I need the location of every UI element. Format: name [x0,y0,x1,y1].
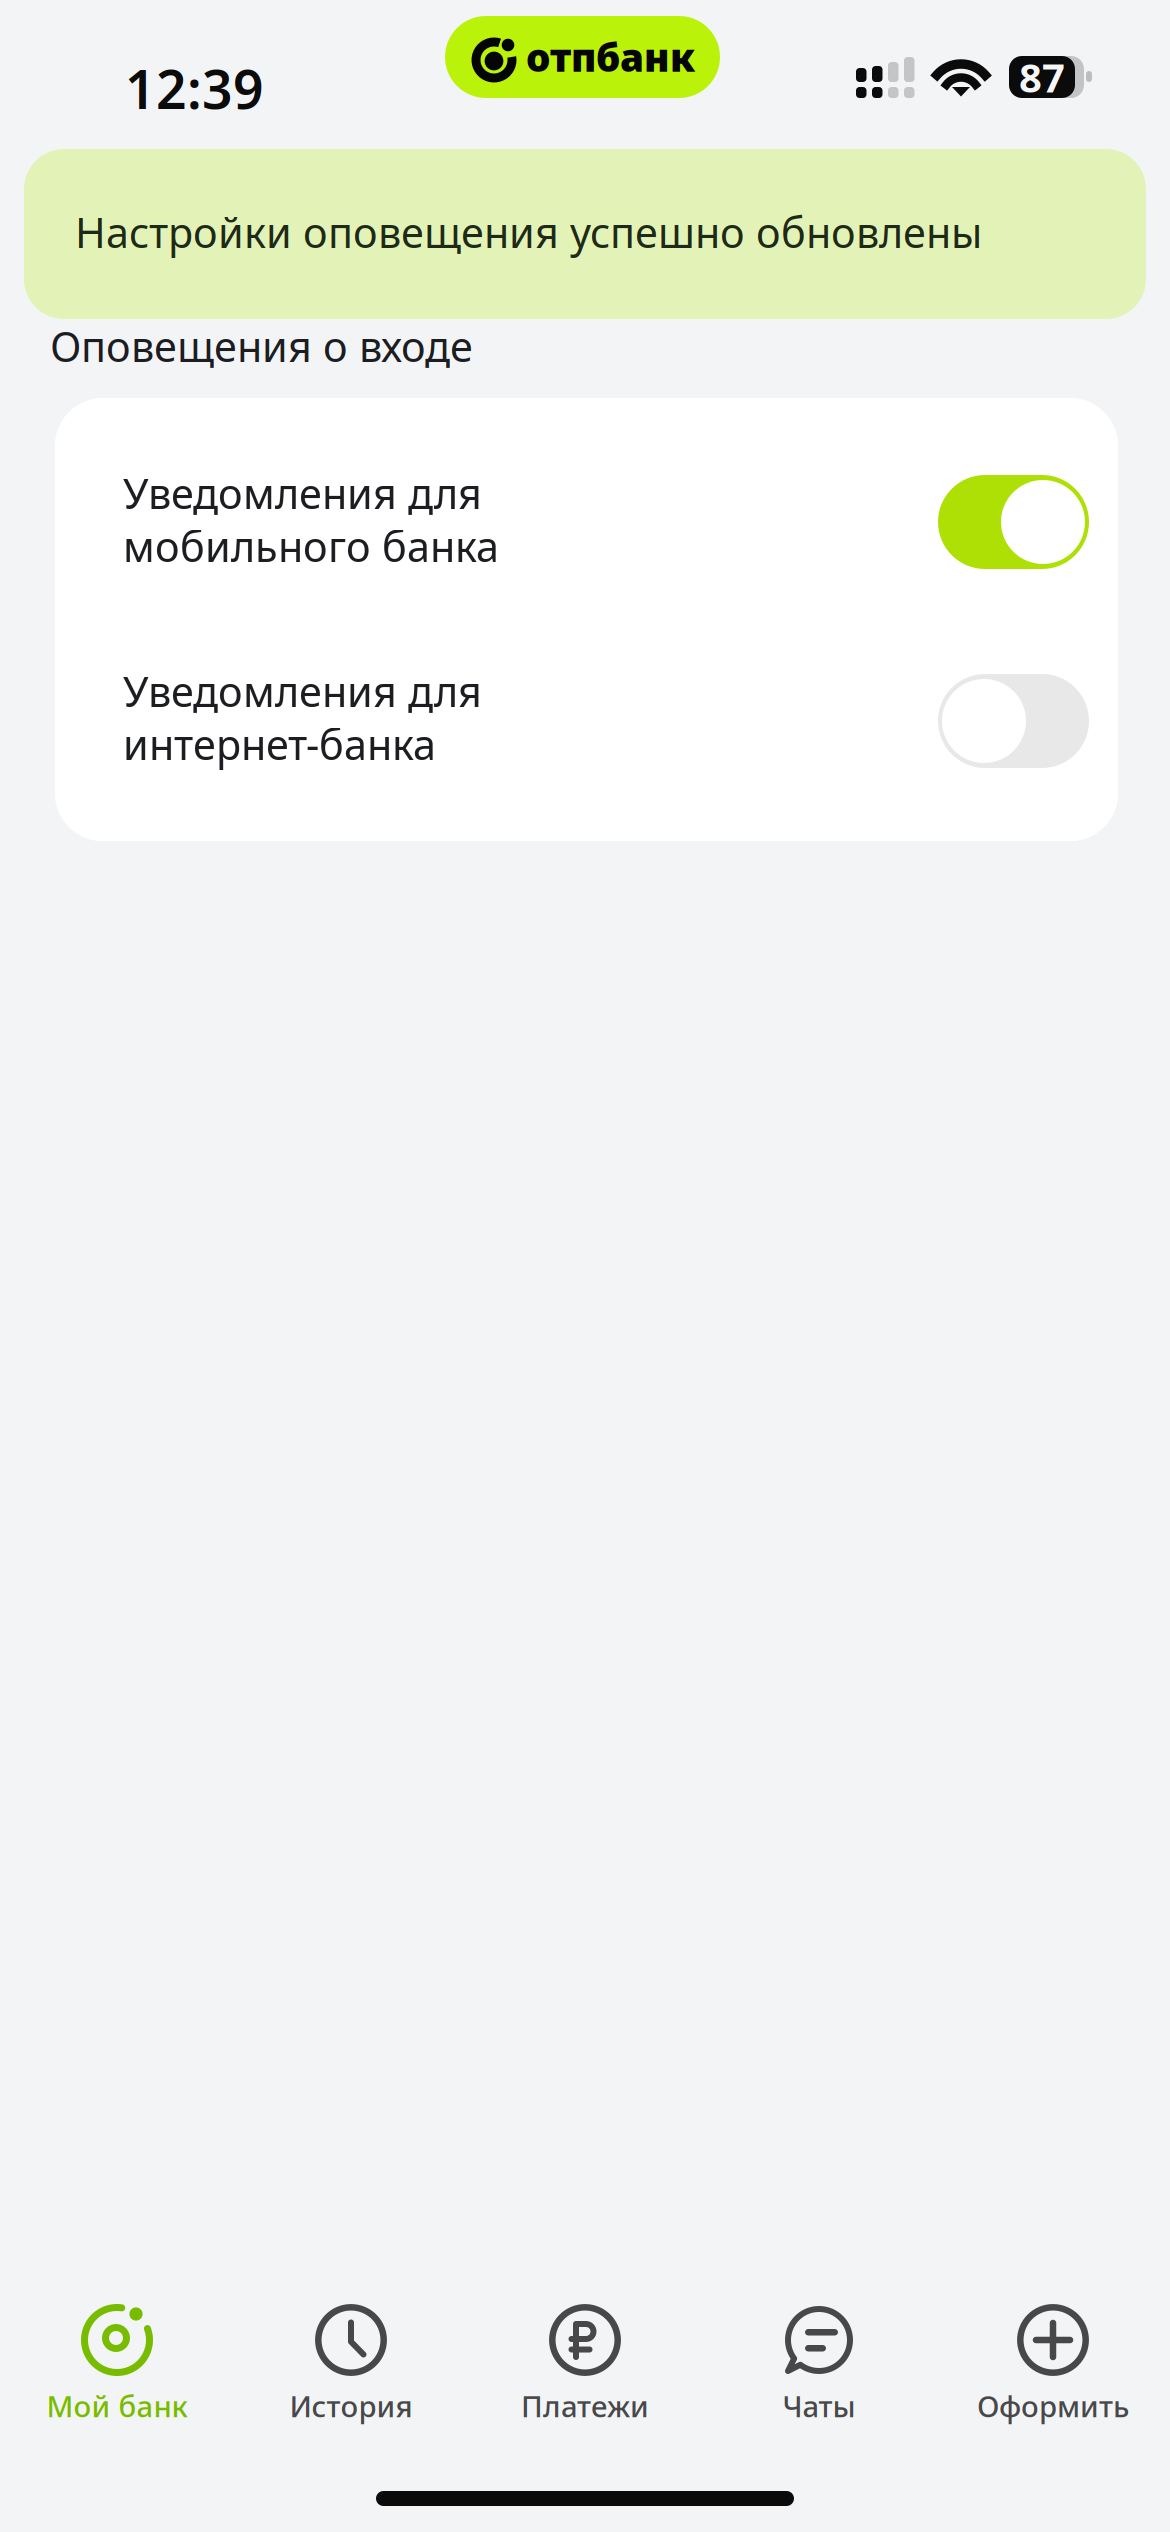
staticText: интернет-банка [123,716,436,771]
button[interactable]: Оформить [936,2303,1170,2453]
button[interactable]: Включить [938,674,1089,768]
staticText: Мой банк [46,2386,187,2425]
button[interactable]: Выключить [938,475,1089,569]
button[interactable]: Мой банк [0,2303,234,2453]
staticText: Чаты [782,2386,855,2425]
staticText: 12:39 [125,53,264,124]
button[interactable]: История [234,2303,468,2453]
staticText: Платежи [521,2386,649,2425]
staticText: Уведомления для [123,663,482,718]
button[interactable]: Платежи [468,2303,702,2453]
staticText: Оформить [977,2386,1129,2425]
staticText: Уведомления для [123,465,482,520]
staticText: История [289,2386,412,2425]
staticText: мобильного банка [123,518,499,573]
button[interactable]: Чаты [702,2303,936,2453]
button[interactable]: Уведомления для [55,398,1118,619]
button[interactable]: Уведомления для [55,619,1118,841]
staticText: отпбанк [526,31,695,82]
staticText: Оповещения о входе [50,318,473,373]
staticText: 87 [1019,50,1065,103]
staticText: Настройки оповещения успешно обновлены [75,204,982,259]
